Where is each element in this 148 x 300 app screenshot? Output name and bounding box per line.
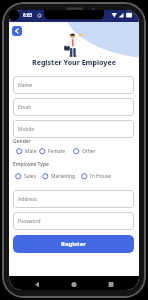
staticText: Name: [18, 82, 33, 89]
staticText: Gender: [13, 138, 31, 145]
button[interactable]: [95, 276, 139, 290]
button[interactable]: Female: [39, 148, 66, 155]
button[interactable]: Male: [16, 148, 37, 155]
button[interactable]: Register: [13, 235, 134, 253]
button[interactable]: Marketing: [42, 173, 76, 180]
staticText: Employee Type: [13, 161, 49, 168]
button[interactable]: Address: [13, 190, 134, 208]
button[interactable]: Password: [13, 212, 134, 230]
staticText: Other: [82, 148, 96, 155]
staticText: Password: [18, 218, 41, 225]
button[interactable]: [52, 276, 95, 290]
staticText: Register: [61, 240, 86, 248]
staticText: Male: [25, 148, 37, 155]
staticText: Marketing: [51, 173, 76, 180]
button[interactable]: [12, 26, 22, 36]
staticText: Address: [18, 196, 37, 203]
button[interactable]: In House: [81, 173, 112, 180]
staticText: Mobile: [18, 126, 35, 133]
staticText: Sales: [24, 173, 37, 180]
button[interactable]: Name: [13, 76, 134, 94]
staticText: 6:03: [23, 12, 33, 18]
staticText: Email: [18, 104, 31, 111]
staticText: Female: [48, 148, 66, 155]
button[interactable]: Other: [73, 148, 96, 155]
button[interactable]: Email: [13, 98, 134, 116]
button[interactable]: [9, 276, 52, 290]
staticText: Register Your Employee: [9, 58, 139, 68]
button[interactable]: Mobile: [13, 120, 134, 138]
staticText: In House: [90, 173, 112, 180]
button[interactable]: Sales: [15, 173, 37, 180]
